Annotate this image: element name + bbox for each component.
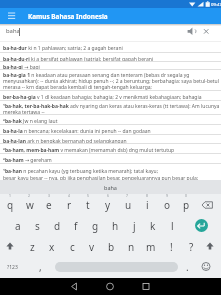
staticText: ¹ba·han n pecahan kayu (yg terbuang keti… [3,168,159,175]
staticText: 1 [9,193,11,198]
staticText: f [74,219,78,233]
staticText: v [89,240,95,254]
button[interactable]: i [138,197,156,213]
staticText: besar kayu besar -- nya, pb jika penghas… [3,175,199,182]
staticText: k [150,219,156,233]
staticText: s [35,219,40,233]
staticText: 5 [87,193,89,198]
staticText: z [30,240,35,254]
button[interactable]: u [119,197,137,213]
staticText: ?123 [7,264,18,271]
staticText: baha [104,184,117,191]
button[interactable]: b [102,239,120,255]
staticText: i [146,198,149,212]
staticText: baha [6,27,20,35]
button[interactable] [4,10,18,22]
staticText: u [125,198,132,212]
staticText: 3 [48,193,50,198]
button[interactable]: x [43,239,61,255]
button[interactable] [0,61,221,69]
staticText: ba·ha·gi → bagi [3,64,40,71]
button[interactable] [2,238,19,255]
staticText: 7 [126,193,128,198]
button[interactable]: f [67,218,85,234]
button[interactable]: a [9,218,27,234]
button[interactable] [0,114,221,124]
staticText: ba·ha·lan ark n bengkak bernanah pd sela… [3,138,127,145]
button[interactable] [0,24,221,41]
staticText: ¹ba·hak, ter·ba·hak-ba·hak adv nyaring d… [3,103,220,110]
button[interactable]: baha [0,180,221,194]
button[interactable] [97,280,123,294]
button[interactable]: t [79,197,97,213]
button[interactable]: k [144,218,162,234]
button[interactable] [195,219,208,232]
button[interactable] [0,42,221,52]
button[interactable] [0,124,221,134]
button[interactable] [0,163,221,180]
button[interactable]: j [125,218,143,234]
button[interactable]: w [21,197,39,213]
button[interactable] [62,280,88,294]
staticText: q [7,198,14,212]
button[interactable]: p [177,197,195,213]
staticText: n [128,240,135,254]
staticText: ²ba·hak Jw n elang laut [3,118,58,125]
button[interactable]: r [60,197,78,213]
staticText: 4 [68,193,70,198]
button[interactable] [185,25,198,38]
button[interactable]: v [83,239,101,255]
button[interactable]: q [1,197,19,213]
staticText: c [70,240,75,254]
button[interactable]: g [86,218,104,234]
staticText: , [39,260,42,274]
button[interactable] [0,52,221,61]
button[interactable]: o [158,197,176,213]
staticText: o [164,198,171,212]
button[interactable] [0,100,221,114]
staticText: r [67,198,72,212]
button[interactable] [202,238,219,255]
staticText: g [92,219,99,233]
button[interactable]: e [40,197,58,213]
staticText: ba·ha·gia 1 n keadaan atau perasaan sena… [3,72,190,79]
staticText: w [26,198,34,212]
staticText: ba·ha·du·ri ki a bersifat pahlawan (satr… [3,56,154,63]
button[interactable]: ? [182,239,200,255]
button[interactable]: ?123 [3,259,21,275]
button[interactable]: m [142,239,160,255]
button[interactable]: h [106,218,124,234]
staticText: ? [189,240,194,254]
staticText: b [108,240,115,254]
button[interactable]: s [28,218,46,234]
button[interactable] [0,69,221,90]
staticText: 0 [185,193,187,198]
button[interactable]: d [48,218,66,234]
button[interactable]: z [23,239,41,255]
staticText: l [171,219,174,233]
button[interactable]: ! [162,239,180,255]
button[interactable]: n [122,239,140,255]
button[interactable] [200,25,213,38]
staticText: ba·ha·la n bencana; kecelakaan: dunia in… [3,128,151,135]
button[interactable] [0,90,221,100]
staticText: d [54,219,61,233]
button[interactable]: y [99,197,117,213]
button[interactable] [0,134,221,143]
staticText: h [112,219,119,233]
button[interactable] [133,280,159,294]
staticText: menyusahkan): -- dunia akhirat; hidup pe… [3,78,219,85]
button[interactable] [0,153,221,163]
button[interactable] [198,196,218,213]
button[interactable]: l [163,218,181,234]
staticText: ba·ha·dur ki n 1 pahlawan; satria; 2 a g… [3,45,123,52]
button[interactable]: c [63,239,81,255]
button[interactable] [0,143,221,153]
button[interactable] [198,258,215,275]
button[interactable]: , [31,259,49,275]
button[interactable] [55,262,178,272]
staticText: merasa -- krn dapat berada kembali di te… [3,84,152,91]
staticText: 09:47 [211,1,221,7]
staticText: y [105,198,111,212]
button[interactable]: . [178,259,196,275]
